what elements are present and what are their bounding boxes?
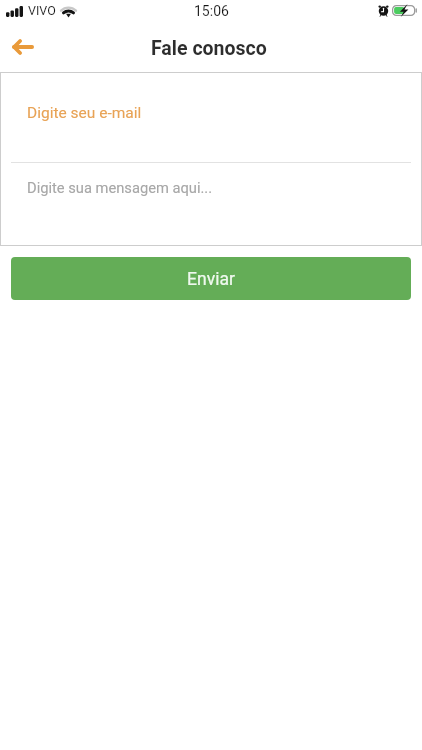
button[interactable]: Enviar <box>11 257 411 300</box>
staticText: Digite seu e-mail <box>27 104 142 122</box>
staticText: Enviar <box>187 269 235 290</box>
staticText: 15:06 <box>194 3 229 19</box>
button[interactable]: Digite sua mensagem aqui... <box>0 163 422 245</box>
button[interactable]: Back <box>4 30 42 64</box>
button[interactable]: Digite seu e-mail <box>0 72 422 162</box>
staticText: Fale conosco <box>151 37 267 60</box>
staticText: VIVO <box>28 3 56 18</box>
staticText: Digite sua mensagem aqui... <box>27 179 213 196</box>
